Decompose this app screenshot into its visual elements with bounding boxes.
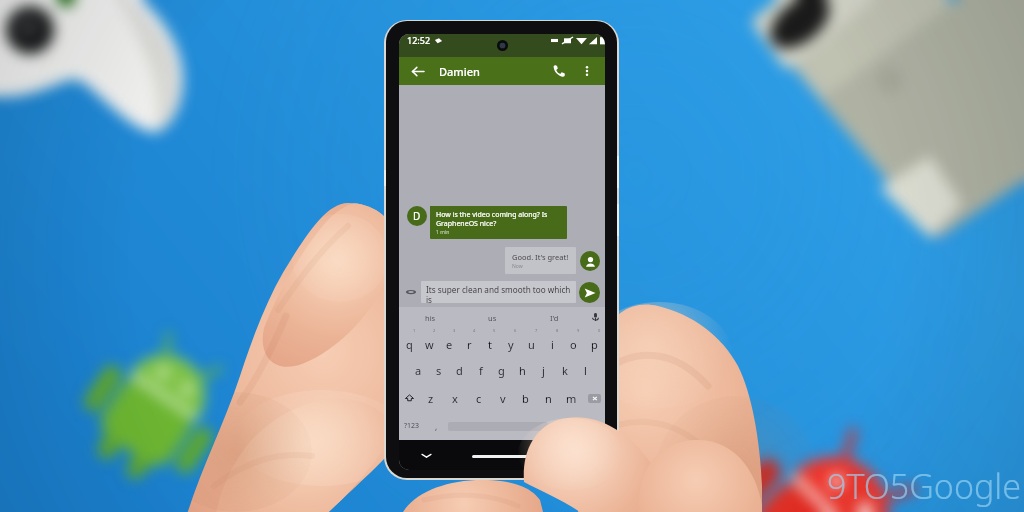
staticText: s (436, 363, 442, 378)
staticText: 9TO5Google (827, 463, 1022, 509)
staticText: c (476, 391, 482, 406)
button[interactable]: Send (579, 282, 600, 303)
button[interactable]: 1 (399, 328, 419, 356)
button[interactable]: j (533, 363, 554, 378)
button[interactable]: 2 (419, 328, 439, 356)
button[interactable]: 6 (500, 328, 521, 356)
staticText: 9 (577, 328, 580, 333)
staticText: k (562, 363, 568, 378)
staticText: x (452, 391, 458, 406)
staticText: 3 (453, 328, 456, 333)
staticText: 8 (556, 328, 559, 333)
staticText: , (435, 421, 438, 432)
button[interactable]: h (512, 363, 533, 378)
staticText: o (570, 337, 577, 352)
button[interactable]: his (399, 313, 461, 323)
staticText: 2 (433, 328, 436, 333)
staticText: z (428, 391, 434, 406)
button[interactable]: 8 (542, 328, 563, 356)
button[interactable]: Damien avatar (407, 206, 427, 226)
staticText: Good. It's great! (512, 252, 569, 262)
button[interactable]: m (560, 391, 583, 406)
staticText: e (446, 337, 453, 352)
staticText: D (413, 209, 421, 223)
button[interactable]: 9 (563, 328, 584, 356)
button[interactable]: I'd (523, 313, 585, 323)
button[interactable]: 0 (584, 328, 605, 356)
button[interactable]: Your avatar (580, 251, 600, 271)
staticText: j (542, 363, 545, 378)
staticText: w (425, 337, 434, 352)
button[interactable]: More options (578, 62, 596, 80)
staticText: 4 (473, 328, 476, 333)
button[interactable]: 5 (479, 328, 500, 356)
staticText: f (479, 363, 483, 378)
button[interactable]: Good. It's great! (505, 247, 576, 274)
staticText: 6 (514, 328, 517, 333)
button[interactable]: Voice input (585, 313, 605, 322)
button[interactable]: ?123 (399, 421, 425, 431)
button[interactable]: b (514, 391, 537, 406)
staticText: r (467, 337, 472, 352)
button[interactable]: Back (406, 60, 428, 82)
button[interactable]: d (449, 363, 470, 378)
button[interactable]: z (419, 391, 443, 406)
button[interactable]: 4 (459, 328, 479, 356)
button[interactable]: c (467, 391, 491, 406)
staticText: 1 (413, 328, 416, 333)
button[interactable]: f (470, 363, 491, 378)
staticText: g (498, 363, 505, 378)
staticText: Now (512, 263, 523, 270)
staticText: t (488, 337, 492, 352)
button[interactable]: v (491, 391, 514, 406)
staticText: m (566, 391, 577, 406)
staticText: us (488, 313, 497, 323)
staticText: q (406, 337, 413, 352)
button[interactable]: Backspace (583, 394, 605, 403)
button[interactable]: Attach (402, 283, 420, 301)
staticText: u (528, 337, 535, 352)
button[interactable]: x (443, 391, 467, 406)
staticText: d (456, 363, 463, 378)
staticText: 0 (598, 328, 601, 333)
staticText: b (522, 391, 529, 406)
button[interactable]: Hide keyboard (419, 448, 433, 462)
staticText: 7 (535, 328, 538, 333)
staticText: his (425, 313, 436, 323)
staticText: h (519, 363, 526, 378)
staticText: I'd (550, 313, 559, 323)
button[interactable]: Home (472, 455, 548, 458)
button[interactable]: n (537, 391, 560, 406)
staticText: y (508, 337, 514, 352)
button[interactable]: 3 (439, 328, 459, 356)
button[interactable]: g (491, 363, 512, 378)
button[interactable]: k (554, 363, 575, 378)
staticText: 1 min (436, 229, 450, 236)
staticText: l (584, 363, 587, 378)
staticText: p (591, 337, 598, 352)
button[interactable]: Space (448, 422, 548, 431)
button[interactable]: Its super clean and smooth too which is (421, 281, 576, 303)
button[interactable]: 7 (521, 328, 542, 356)
button[interactable]: Call (548, 60, 570, 82)
staticText: Damien (439, 64, 480, 79)
staticText: a (415, 363, 422, 378)
staticText: 5 (493, 328, 496, 333)
staticText: Its super clean and smooth too which is (426, 284, 571, 303)
staticText: 12:52 (407, 34, 431, 46)
button[interactable]: s (428, 363, 449, 378)
button[interactable]: How is the video coming along? Is Graphe… (430, 206, 567, 239)
button[interactable]: us (461, 313, 523, 323)
staticText: i (551, 337, 554, 352)
staticText: ?123 (404, 421, 420, 431)
button[interactable]: Shift (399, 394, 419, 403)
staticText: n (545, 391, 552, 406)
button[interactable]: a (408, 363, 428, 378)
button[interactable]: l (575, 363, 596, 378)
staticText: How is the video coming along? Is Graphe… (436, 210, 561, 228)
button[interactable]: , (425, 421, 448, 432)
staticText: v (500, 391, 506, 406)
